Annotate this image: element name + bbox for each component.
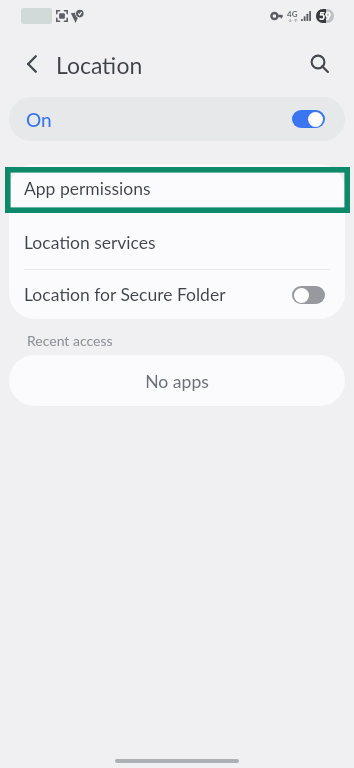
button[interactable]: On — [9, 97, 345, 141]
staticText: No apps — [145, 371, 209, 392]
button[interactable]: App permissions — [9, 164, 345, 215]
button[interactable]: Navigate up — [14, 46, 50, 82]
button[interactable]: Location for Secure Folder — [9, 270, 345, 319]
staticText: 4G — [287, 9, 298, 19]
button[interactable]: No apps — [9, 355, 345, 406]
staticText: Location services — [24, 232, 156, 253]
staticText: Location — [56, 51, 143, 79]
staticText: On — [26, 108, 52, 131]
staticText: App permissions — [24, 178, 151, 199]
button[interactable]: Location services — [9, 215, 345, 270]
button[interactable]: Search — [302, 46, 338, 82]
staticText: 59 — [319, 10, 332, 23]
staticText: Location for Secure Folder — [24, 284, 226, 305]
staticText: Recent access — [27, 332, 113, 349]
